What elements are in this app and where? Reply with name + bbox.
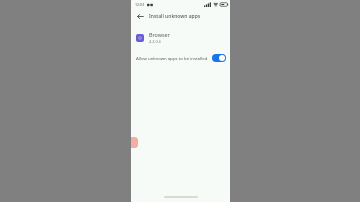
staticText: Allow unknown apps to be installed	[136, 55, 209, 61]
button[interactable]: Allow unknown apps to be installed	[131, 52, 230, 64]
button[interactable]: Browser	[131, 28, 230, 47]
other: Allow unknown apps toggle	[212, 54, 226, 62]
staticText: Install unknown apps	[149, 13, 226, 20]
button[interactable]: Back	[135, 11, 146, 22]
staticText: Browser	[149, 31, 170, 38]
staticText: 4.2.0.4	[149, 39, 161, 44]
staticText: 12:03	[135, 2, 145, 7]
